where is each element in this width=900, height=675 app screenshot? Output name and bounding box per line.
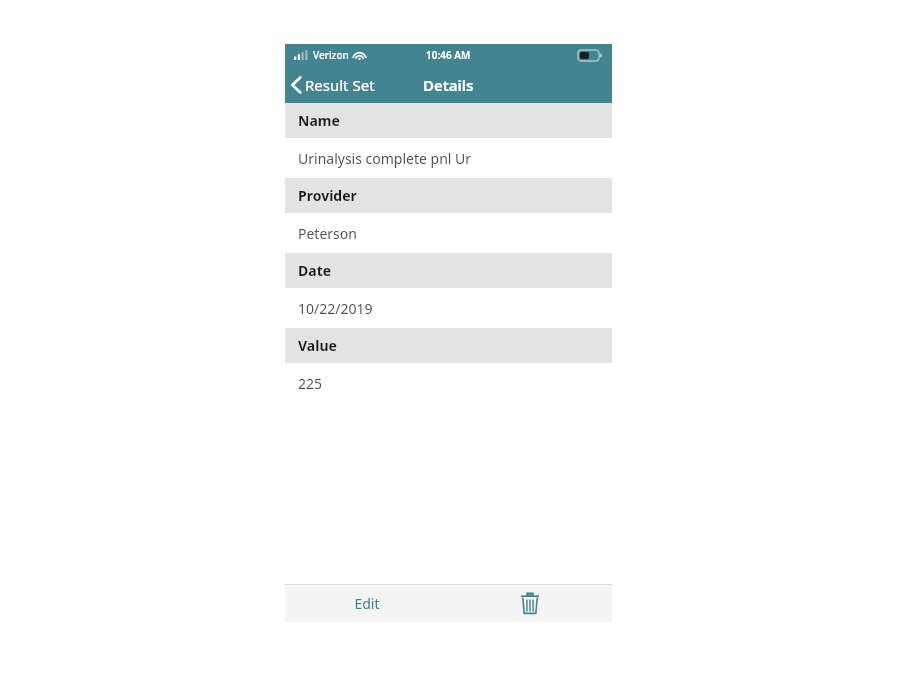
button[interactable]: 225 bbox=[285, 363, 612, 403]
button[interactable]: Result Set bbox=[285, 66, 383, 103]
staticText: Peterson bbox=[298, 224, 357, 243]
button[interactable]: 10/22/2019 bbox=[285, 288, 612, 328]
staticText: Verizon bbox=[313, 48, 349, 62]
staticText: Name bbox=[298, 111, 340, 130]
staticText: Date bbox=[298, 261, 332, 280]
staticText: 10/22/2019 bbox=[298, 299, 373, 318]
button[interactable]: Peterson bbox=[285, 213, 612, 253]
staticText: Edit bbox=[354, 594, 380, 613]
staticText: 225 bbox=[298, 374, 323, 393]
staticText: 10:46 AM bbox=[426, 48, 471, 62]
staticText: Details bbox=[423, 75, 474, 95]
button[interactable]: Urinalysis complete pnl Ur bbox=[285, 138, 612, 178]
staticText: Value bbox=[298, 336, 337, 355]
button[interactable]: Edit bbox=[285, 585, 448, 622]
staticText: Result Set bbox=[305, 75, 375, 95]
staticText: Provider bbox=[298, 186, 357, 205]
staticText: Urinalysis complete pnl Ur bbox=[298, 149, 472, 168]
button[interactable]: Delete bbox=[448, 585, 612, 622]
